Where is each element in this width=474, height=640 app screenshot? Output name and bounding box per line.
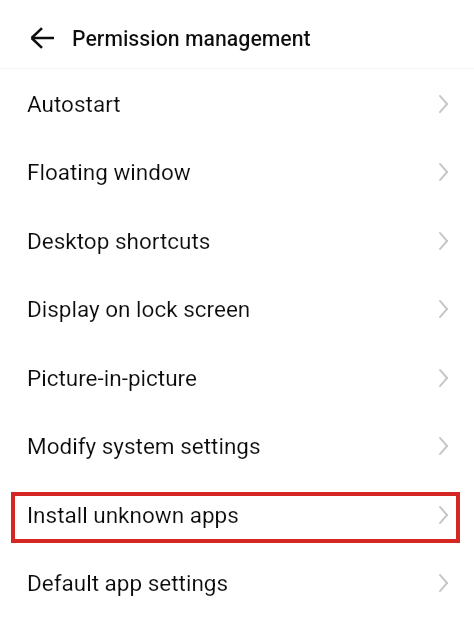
staticText: Display on lock screen — [27, 296, 251, 322]
staticText: Permission management — [72, 26, 311, 51]
staticText: Floating window — [27, 159, 191, 185]
staticText: Desktop shortcuts — [27, 228, 211, 254]
button[interactable]: Modify system settings — [0, 411, 474, 480]
button[interactable]: Back — [20, 20, 56, 56]
button[interactable]: Picture-in-picture — [0, 343, 474, 412]
button[interactable]: Display on lock screen — [0, 274, 474, 343]
staticText: Install unknown apps — [27, 502, 239, 528]
staticText: Default app settings — [27, 570, 229, 596]
button[interactable]: Install unknown apps — [0, 480, 474, 549]
staticText: Picture-in-picture — [27, 365, 197, 391]
button[interactable]: Default app settings — [0, 548, 474, 617]
button[interactable]: Autostart — [0, 69, 474, 138]
staticText: Modify system settings — [27, 433, 261, 459]
staticText: Autostart — [27, 91, 121, 117]
button[interactable]: Floating window — [0, 137, 474, 206]
button[interactable]: Desktop shortcuts — [0, 206, 474, 275]
